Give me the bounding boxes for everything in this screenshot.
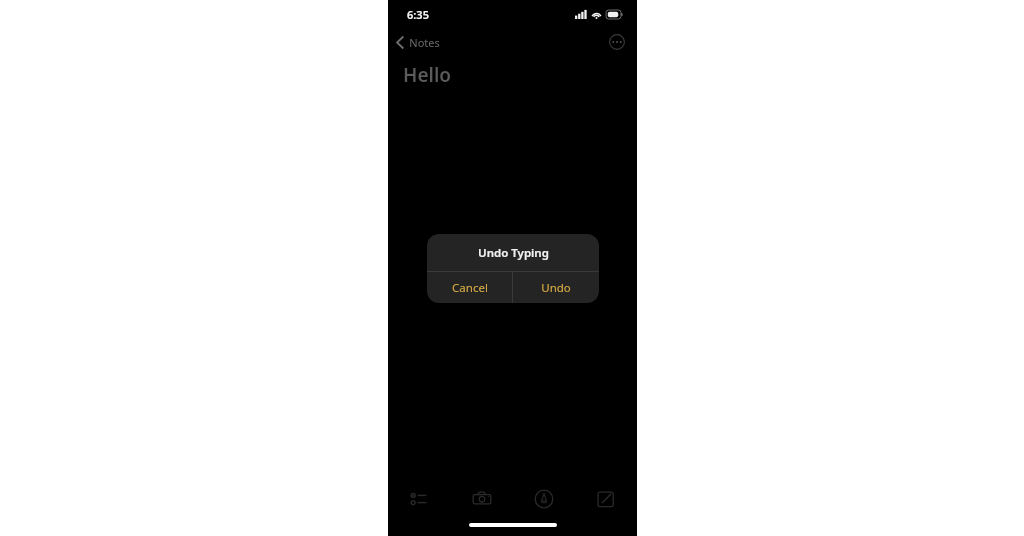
staticText: Undo: [541, 280, 571, 296]
button[interactable]: Notes: [392, 32, 444, 53]
button[interactable]: Cancel: [427, 272, 512, 303]
staticText: Cancel: [452, 280, 488, 296]
button[interactable]: More options: [607, 32, 627, 52]
button[interactable]: Camera: [451, 480, 513, 518]
button[interactable]: New note: [575, 480, 637, 518]
staticText: 6:35: [407, 7, 429, 22]
button[interactable]: Checklist: [388, 480, 451, 518]
staticText: Hello: [403, 62, 451, 88]
button[interactable]: Markup: [513, 480, 575, 518]
staticText: Undo Typing: [478, 245, 549, 261]
button[interactable]: Undo: [513, 272, 599, 303]
staticText: Notes: [409, 35, 440, 50]
